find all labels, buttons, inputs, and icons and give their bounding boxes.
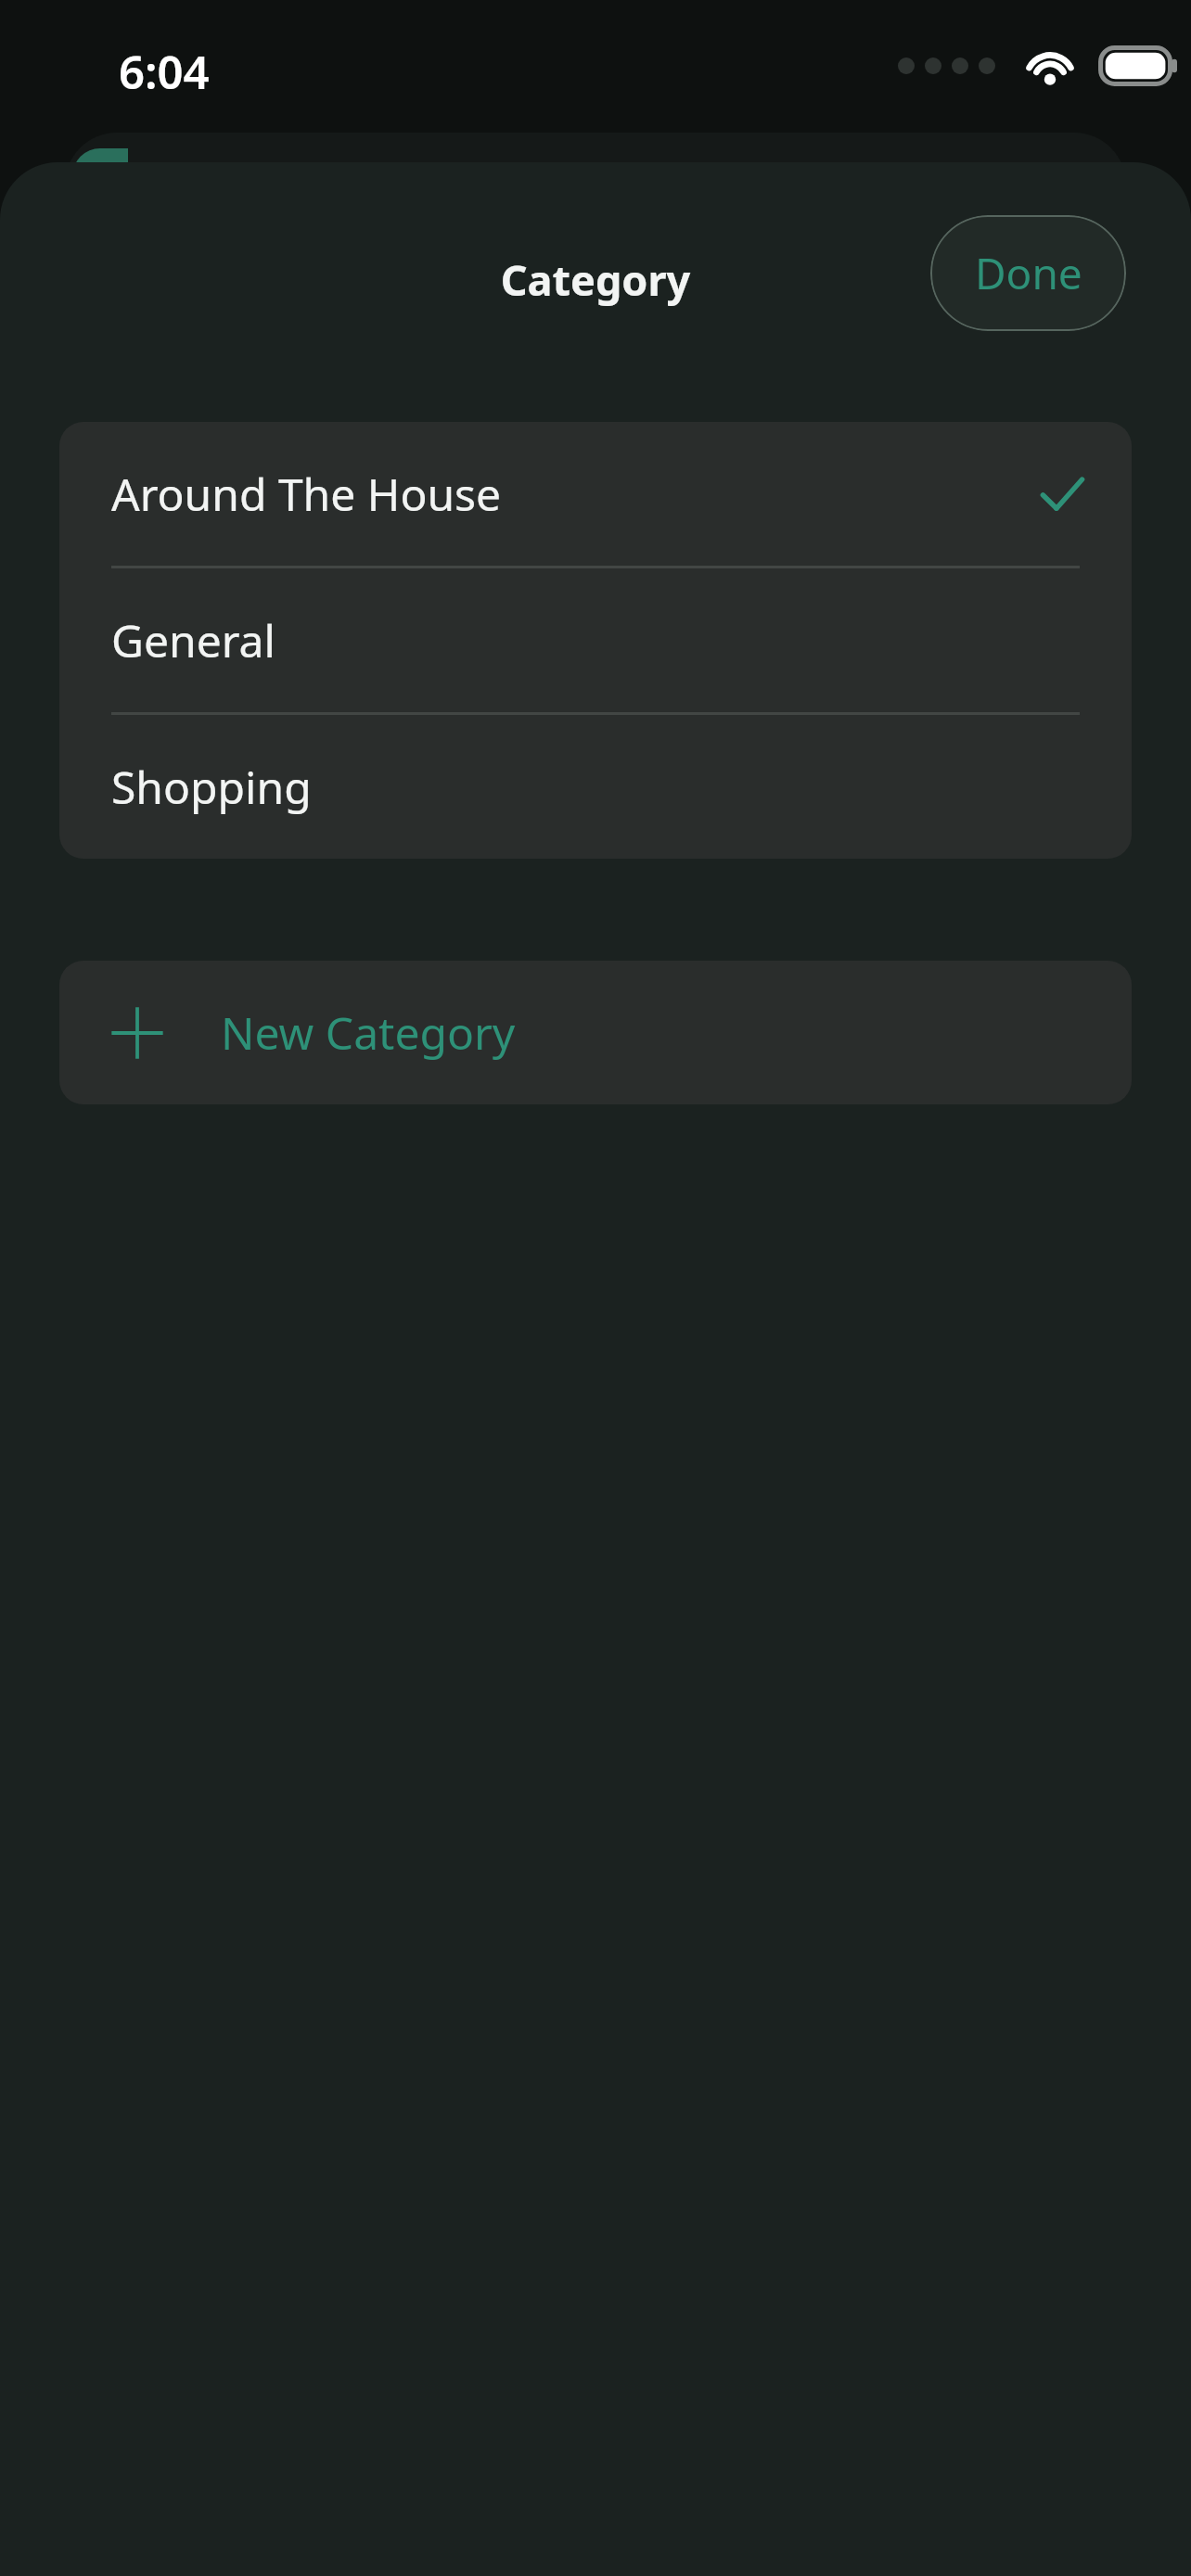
staticText: Done — [975, 244, 1082, 302]
button[interactable]: Done — [930, 215, 1126, 331]
button[interactable]: Around The House — [59, 422, 1132, 566]
staticText: New Category — [221, 1002, 516, 1063]
button[interactable]: General — [59, 568, 1132, 712]
button[interactable]: Shopping — [59, 715, 1132, 859]
staticText: 6:04 — [119, 41, 210, 103]
staticText: Category — [0, 251, 1191, 308]
staticText: Shopping — [111, 757, 1083, 817]
button[interactable]: New Category — [59, 961, 1132, 1104]
staticText: General — [111, 610, 1083, 670]
staticText: Around The House — [111, 464, 1041, 524]
